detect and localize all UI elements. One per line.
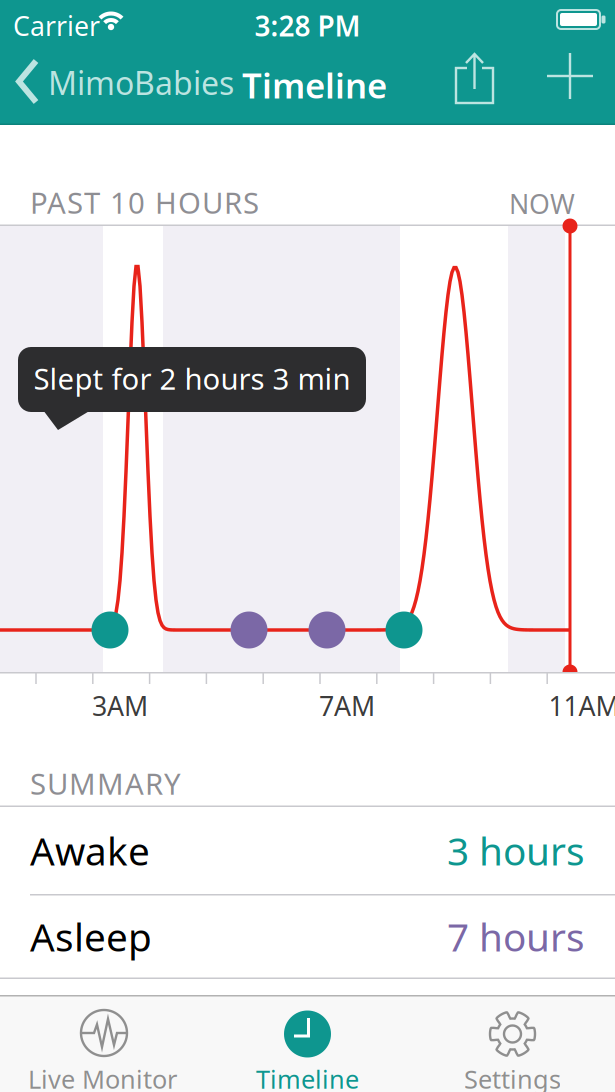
staticText: Timeline [256, 1062, 359, 1092]
staticText: 11AM [548, 688, 615, 723]
button[interactable]: Asleep [0, 895, 615, 977]
button[interactable]: Live Monitor [0, 995, 205, 1092]
button[interactable]: Awake [0, 807, 615, 894]
staticText: 3AM [92, 688, 148, 723]
button[interactable]: Timeline [205, 995, 410, 1092]
staticText: Settings [464, 1062, 561, 1092]
staticText: Slept for 2 hours 3 min [33, 359, 350, 398]
staticText: 3:28 PM [254, 7, 360, 44]
staticText: Live Monitor [28, 1062, 177, 1092]
staticText: PAST 10 HOURS [30, 183, 259, 222]
button[interactable]: Settings [410, 995, 615, 1092]
staticText: 7 hours [447, 911, 585, 962]
staticText: Asleep [30, 911, 152, 962]
button[interactable]: Back [0, 40, 234, 125]
staticText: SUMMARY [30, 764, 181, 803]
staticText: 7AM [319, 688, 375, 723]
button[interactable]: Share [455, 52, 495, 106]
staticText: NOW [509, 186, 575, 221]
staticText: MimoBabies [48, 61, 234, 104]
button[interactable]: Add [547, 53, 593, 99]
staticText: Timeline [242, 62, 387, 108]
staticText: Carrier [13, 8, 100, 43]
staticText: 3 hours [447, 825, 585, 876]
staticText: Awake [30, 825, 150, 876]
